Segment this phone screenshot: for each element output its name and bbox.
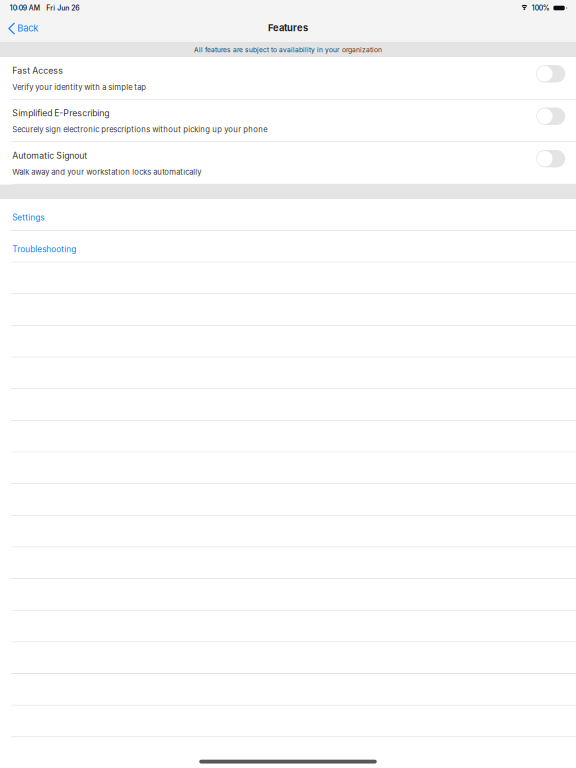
staticText: Securely sign electronic prescriptions w… xyxy=(12,125,267,134)
button[interactable]: Fast Access xyxy=(0,57,576,100)
staticText: 100% xyxy=(532,4,550,12)
staticText: All features are subject to availability… xyxy=(194,46,382,54)
button[interactable]: Simplified E-Prescribing xyxy=(0,100,576,142)
staticText: 10:09 AM xyxy=(10,4,40,12)
staticText: Settings xyxy=(12,212,44,222)
staticText: Walk away and your workstation locks aut… xyxy=(12,167,201,177)
button[interactable]: Troubleshooting xyxy=(0,231,576,262)
staticText: Simplified E-Prescribing xyxy=(12,108,109,118)
staticText: Verify your identity with a simple tap xyxy=(12,82,146,92)
staticText: Features xyxy=(268,22,308,34)
button[interactable]: Automatic Signout xyxy=(0,142,576,185)
staticText: Troubleshooting xyxy=(12,244,76,254)
button[interactable]: Settings xyxy=(0,199,576,231)
staticText: Back xyxy=(17,22,38,34)
button[interactable]: Back xyxy=(0,16,45,42)
staticText: Fast Access xyxy=(12,65,63,76)
staticText: Fri Jun 26 xyxy=(46,4,79,12)
staticText: Automatic Signout xyxy=(12,150,87,161)
